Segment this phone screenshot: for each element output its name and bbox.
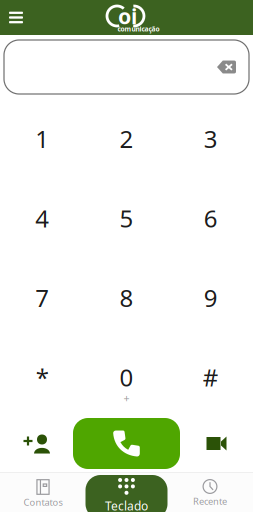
button[interactable]: 9 <box>169 259 253 338</box>
button[interactable]: 4 <box>0 179 84 259</box>
button[interactable]: Call <box>73 418 180 469</box>
staticText: 0 <box>119 361 133 393</box>
staticText: 6 <box>204 202 218 234</box>
button[interactable]: 5 <box>84 179 169 259</box>
button[interactable]: Menu <box>0 0 32 35</box>
button[interactable]: 3 <box>169 100 253 179</box>
staticText: comunicação <box>117 25 159 33</box>
staticText: Recente <box>193 495 227 507</box>
button[interactable]: Video call <box>180 418 253 469</box>
staticText: Teclado <box>105 498 148 512</box>
button[interactable]: 2 <box>84 100 169 179</box>
button[interactable]: Delete <box>210 45 243 89</box>
button[interactable]: # <box>169 338 253 418</box>
staticText: Contatos <box>23 496 62 508</box>
button[interactable]: Teclado <box>85 475 167 512</box>
staticText: 1 <box>35 123 49 155</box>
staticText: 3 <box>204 123 218 155</box>
staticText: 2 <box>119 123 133 155</box>
button[interactable]: 7 <box>0 259 84 338</box>
button[interactable]: Recente <box>167 475 252 512</box>
button[interactable]: 6 <box>169 179 253 259</box>
staticText: # <box>203 361 219 393</box>
button[interactable]: Contatos <box>0 475 85 512</box>
staticText: 4 <box>35 202 49 234</box>
staticText: 9 <box>204 282 218 314</box>
staticText: 5 <box>119 202 133 234</box>
staticText: * <box>36 361 49 393</box>
button[interactable]: * <box>0 338 84 418</box>
staticText: oi <box>118 2 137 30</box>
staticText: 7 <box>35 282 49 314</box>
staticText: + <box>123 391 129 405</box>
button[interactable]: Add contact <box>0 418 73 469</box>
staticText: 8 <box>119 282 133 314</box>
button[interactable]: 1 <box>0 100 84 179</box>
button[interactable]: 0 <box>84 338 169 418</box>
button[interactable]: 8 <box>84 259 169 338</box>
